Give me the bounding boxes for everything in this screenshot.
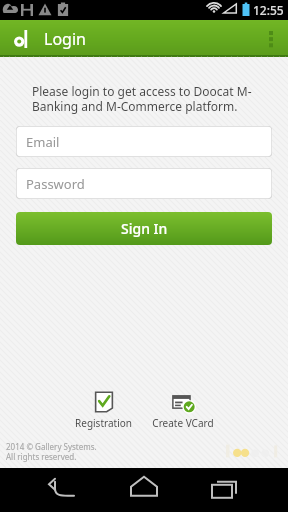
button[interactable]: Home	[96, 468, 192, 512]
staticText: Create VCard	[152, 416, 214, 430]
button[interactable]: More options	[254, 20, 288, 57]
button[interactable]: Email	[16, 126, 272, 157]
staticText: Registration	[75, 416, 132, 430]
staticText: Please login to get access to Doocat M-B…	[32, 83, 256, 114]
staticText: Sign In	[121, 219, 168, 238]
button[interactable]: Back	[0, 468, 96, 512]
button[interactable]: Create VCard	[147, 391, 219, 430]
staticText: Email	[26, 133, 60, 151]
staticText: Password	[26, 175, 85, 193]
staticText: 12:55	[253, 2, 284, 18]
button[interactable]: Registration	[70, 391, 137, 430]
button[interactable]: Recent apps	[192, 468, 288, 512]
staticText: 2014 © Gallery Systems. All rights reser…	[6, 441, 97, 462]
button[interactable]: Sign In	[16, 212, 272, 245]
staticText: Login	[44, 28, 86, 50]
button[interactable]: Password	[16, 168, 272, 199]
